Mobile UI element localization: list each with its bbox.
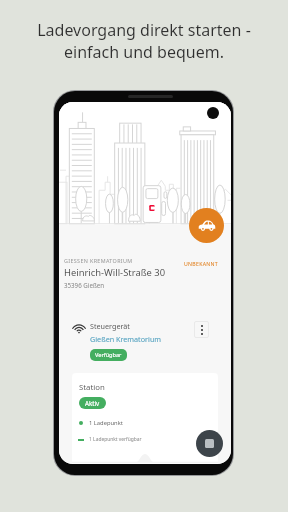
staticText: 1 Ladepunkt verfügbar xyxy=(89,436,142,443)
staticText: 1 Ladepunkt xyxy=(89,419,123,427)
staticText: Gießen Krematorium xyxy=(90,334,162,344)
staticText: Ladevorgang direkt starten - einfach und… xyxy=(37,19,251,63)
staticText: Verfügbar xyxy=(95,351,122,359)
staticText: Aktiv xyxy=(85,399,100,407)
staticText: UNBEKANNT xyxy=(184,260,218,267)
button[interactable]: Fahrzeug laden xyxy=(189,208,224,243)
button[interactable]: Steuergerät xyxy=(59,321,231,361)
staticText: Heinrich-Will-Straße 30 xyxy=(64,266,166,279)
button[interactable]: Aufnahme stoppen xyxy=(196,430,223,457)
staticText: GIESSEN KREMATORIUM xyxy=(64,257,133,264)
button[interactable]: Mehr Optionen xyxy=(194,321,209,338)
staticText: Station xyxy=(79,382,105,393)
button[interactable]: Station xyxy=(72,373,218,464)
staticText: 35396 Gießen xyxy=(64,281,105,289)
staticText: Steuergerät xyxy=(90,321,130,331)
